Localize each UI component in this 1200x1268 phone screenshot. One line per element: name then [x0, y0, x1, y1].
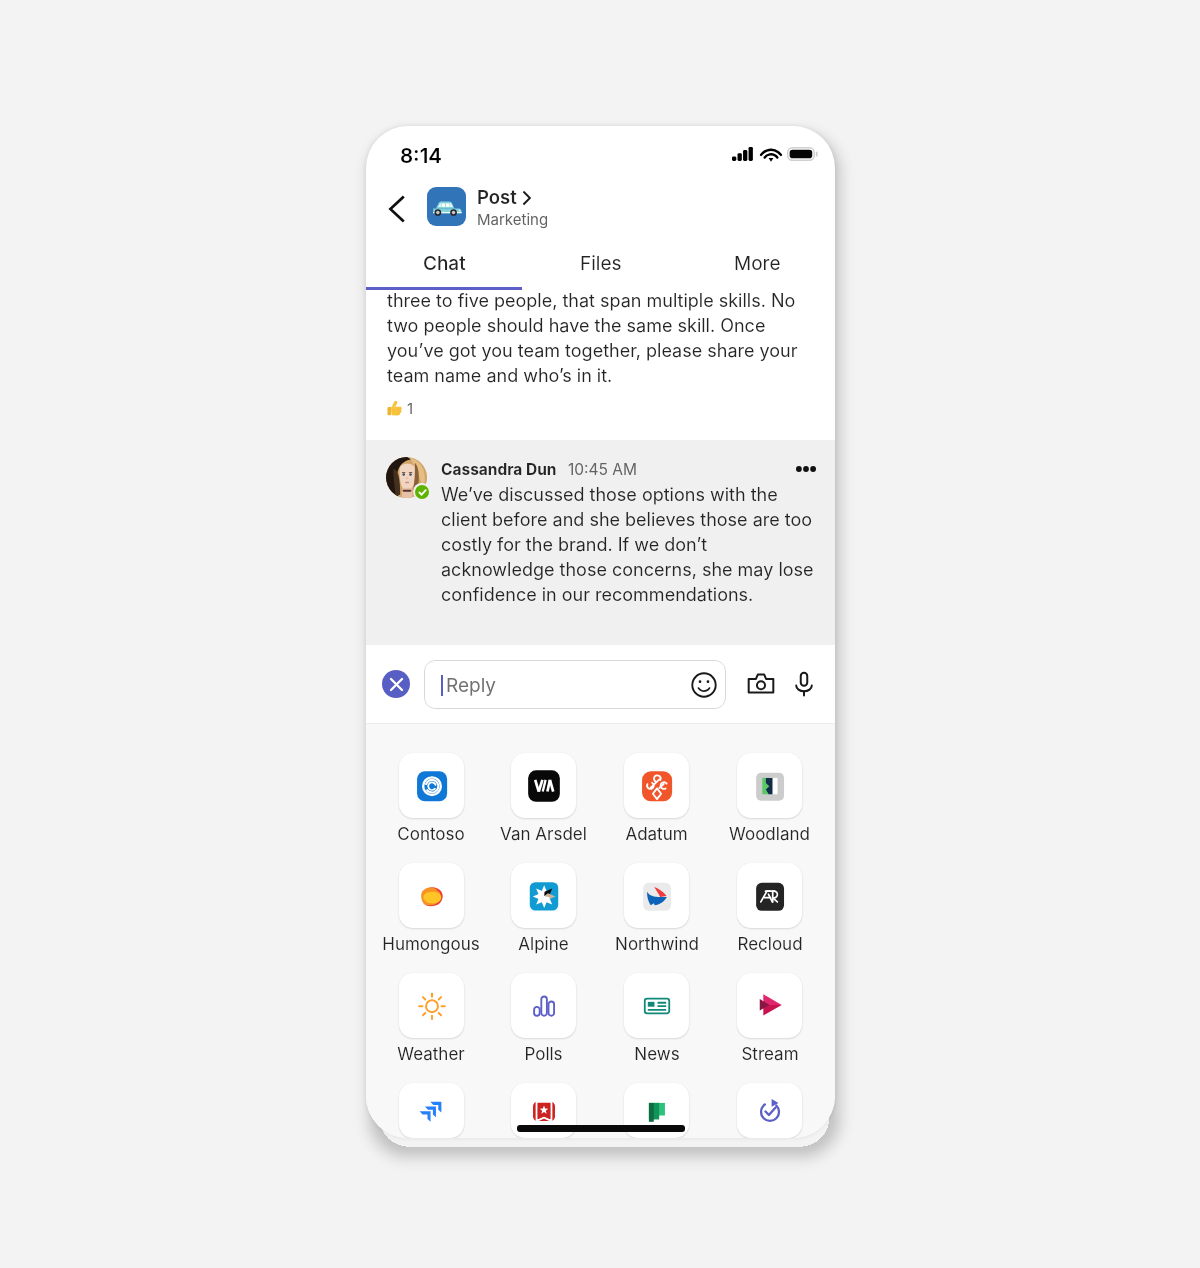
button[interactable]: Humongous [375, 863, 487, 955]
button[interactable]: Polls [487, 973, 600, 1065]
staticText: 8:14 [400, 143, 442, 168]
button[interactable]: Alpine [487, 863, 600, 955]
button[interactable]: Reply [424, 660, 726, 709]
staticText: 1 [407, 399, 414, 417]
staticText: Alpine [518, 934, 569, 955]
staticText: Adatum [625, 824, 688, 845]
button[interactable]: Microphone [787, 667, 821, 701]
staticText: Chat [423, 252, 466, 275]
staticText: News [634, 1044, 680, 1065]
button[interactable]: Post [477, 186, 549, 228]
staticText: Post [477, 186, 517, 208]
staticText: Humongous [382, 934, 480, 955]
staticText: Northwind [615, 934, 699, 955]
button[interactable]: Back [370, 178, 422, 240]
button[interactable]: News [600, 973, 713, 1065]
staticText: We’ve discussed those options with the c… [441, 484, 816, 605]
button[interactable]: 1 [387, 399, 414, 417]
staticText: Woodland [729, 824, 810, 845]
button[interactable]: Stream [713, 973, 826, 1065]
staticText: Files [580, 252, 622, 275]
button[interactable]: More [679, 244, 835, 287]
button[interactable]: Jira [375, 1083, 487, 1138]
button[interactable]: Contoso [375, 753, 487, 845]
staticText: Van Arsdel [500, 824, 587, 845]
staticText: Reply [446, 674, 497, 697]
staticText: More [734, 252, 781, 275]
button[interactable]: Chat [366, 244, 523, 287]
button[interactable]: Updates [713, 1083, 826, 1138]
button[interactable]: Planner [600, 1083, 713, 1138]
staticText: Recloud [737, 934, 803, 955]
button[interactable]: Weather [375, 973, 487, 1065]
staticText: Stream [741, 1044, 799, 1065]
staticText: Cassandra Dun [441, 460, 557, 479]
staticText: Contoso [397, 824, 465, 845]
staticText: Weather [397, 1044, 465, 1065]
button[interactable]: Files [523, 244, 679, 287]
staticText: three to five people, that span multiple… [387, 290, 819, 386]
button[interactable]: Northwind [600, 863, 713, 955]
button[interactable]: Post team avatar [427, 187, 466, 226]
button[interactable]: Close reply [382, 670, 410, 698]
staticText: 10:45 AM [568, 460, 638, 479]
button[interactable]: Woodland [713, 753, 826, 845]
button[interactable]: Recloud [713, 863, 826, 955]
button[interactable]: Wrike [487, 1083, 600, 1138]
button[interactable]: Adatum [600, 753, 713, 845]
staticText: Marketing [477, 210, 549, 228]
button[interactable]: Camera [744, 667, 778, 701]
staticText: Polls [524, 1044, 563, 1065]
button[interactable]: More options [791, 454, 821, 484]
button[interactable]: Van Arsdel [487, 753, 600, 845]
